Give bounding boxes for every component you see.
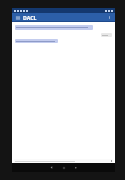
button[interactable] — [15, 39, 58, 43]
button[interactable]: Home — [60, 164, 67, 171]
staticText: DACL — [23, 14, 37, 21]
button[interactable]: Navigation menu — [14, 14, 21, 21]
button[interactable]: Recent apps — [72, 164, 79, 171]
button[interactable] — [15, 25, 93, 30]
button[interactable] — [101, 33, 112, 37]
button[interactable]: Back — [48, 164, 55, 171]
button[interactable]: Music — [63, 163, 89, 172]
button[interactable] — [14, 159, 113, 163]
button[interactable]: Gallery — [37, 163, 63, 172]
button[interactable]: More options — [106, 14, 113, 21]
